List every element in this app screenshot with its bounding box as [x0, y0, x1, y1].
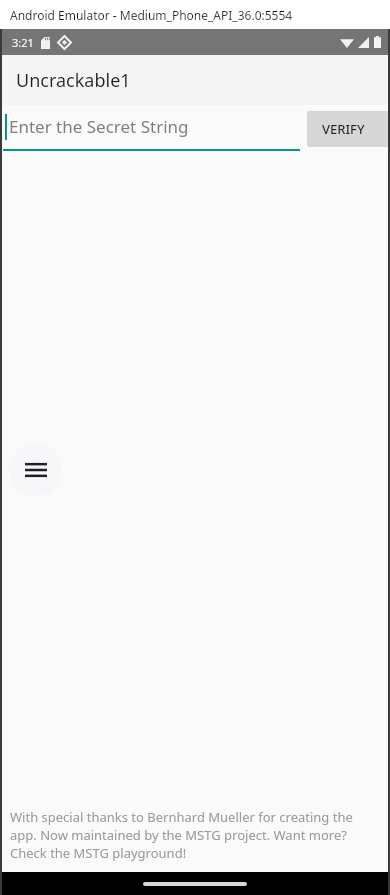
- staticText: Android Emulator - Medium_Phone_API_36.0…: [10, 7, 293, 23]
- staticText: Enter the Secret String: [9, 115, 189, 138]
- button[interactable]: Menu: [9, 443, 62, 496]
- staticText: Uncrackable1: [16, 68, 131, 93]
- staticText: 3:21: [12, 35, 34, 50]
- button[interactable]: VERIFY: [307, 111, 390, 147]
- button[interactable]: Enter the Secret String: [3, 111, 300, 151]
- staticText: VERIFY: [322, 120, 365, 138]
- staticText: With special thanks to Bernhard Mueller …: [10, 808, 382, 862]
